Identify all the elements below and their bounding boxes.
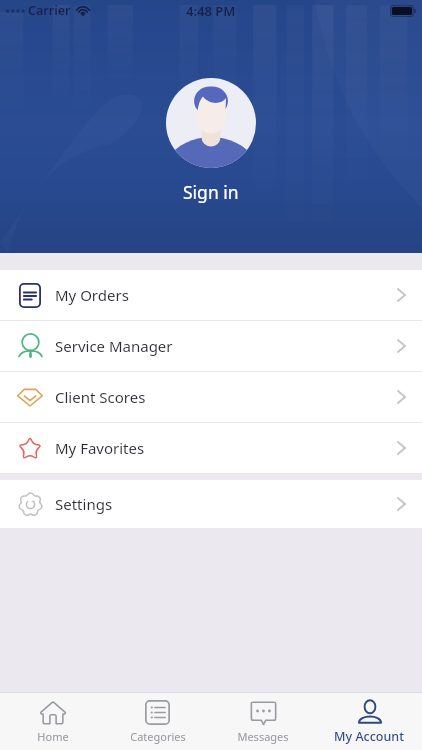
button[interactable]: Home [0, 693, 105, 750]
button[interactable]: Service Manager [0, 321, 422, 371]
button[interactable]: Settings [0, 480, 422, 528]
staticText: My Favorites [55, 438, 145, 458]
staticText: Messages [237, 729, 289, 744]
button[interactable]: My Account [316, 693, 422, 750]
button[interactable]: Client Scores [0, 372, 422, 422]
staticText: Categories [130, 729, 186, 744]
staticText: 4:48 PM [186, 2, 236, 20]
staticText: Service Manager [55, 336, 173, 356]
button[interactable]: My Orders [0, 270, 422, 320]
button[interactable]: Sign in [166, 78, 256, 168]
staticText: Home [37, 729, 69, 744]
staticText: Settings [55, 494, 113, 514]
staticText: My Account [334, 728, 404, 745]
staticText: Carrier [28, 2, 71, 19]
staticText: Sign in [183, 180, 239, 204]
button[interactable]: My Favorites [0, 423, 422, 473]
staticText: Client Scores [55, 387, 146, 407]
staticText: My Orders [55, 285, 129, 305]
button[interactable]: Messages [210, 693, 316, 750]
button[interactable]: Categories [105, 693, 210, 750]
